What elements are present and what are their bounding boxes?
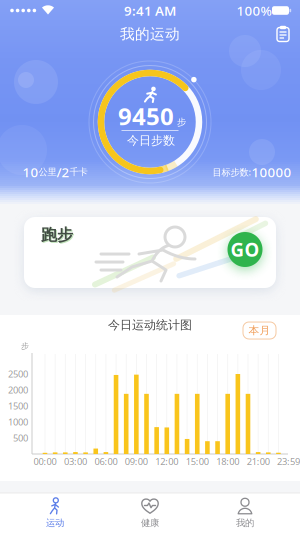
staticText: 步	[177, 116, 186, 128]
staticText: 12:00	[155, 455, 178, 468]
staticText: 9:41 AM	[124, 2, 176, 19]
button[interactable]: 跑步	[24, 217, 276, 288]
staticText: 1000	[8, 416, 28, 428]
staticText: 21:00	[247, 455, 270, 468]
staticText: 我的	[236, 517, 254, 529]
staticText: 健康	[141, 517, 159, 529]
staticText: 2500	[8, 368, 28, 380]
staticText: 运动	[46, 517, 64, 529]
staticText: /2	[56, 163, 69, 181]
staticText: 1500	[8, 400, 28, 412]
staticText: 03:00	[64, 455, 87, 468]
staticText: 今日运动统计图	[108, 318, 192, 332]
staticText: 本月	[248, 324, 270, 337]
staticText: 100%	[236, 2, 271, 19]
staticText: 跑步	[41, 225, 73, 245]
staticText: 10000	[251, 163, 291, 181]
staticText: 目标步数:	[212, 166, 251, 178]
staticText: 步	[21, 341, 29, 351]
staticText: GO	[230, 237, 259, 262]
staticText: 18:00	[216, 455, 239, 468]
button[interactable]: 运动	[20, 494, 90, 532]
staticText: 09:00	[125, 455, 148, 468]
button[interactable]: 本月	[243, 322, 276, 339]
staticText: 今日步数	[127, 133, 175, 148]
button[interactable]: 运动记录	[271, 21, 295, 45]
button[interactable]: 健康	[115, 494, 185, 532]
staticText: 我的运动	[120, 25, 180, 43]
button[interactable]: 开始跑步	[225, 230, 264, 269]
staticText: 千卡	[69, 166, 87, 178]
staticText: 23:59	[277, 455, 300, 468]
button[interactable]: 我的	[210, 494, 280, 532]
staticText: 跑步	[42, 226, 74, 246]
staticText: 公里	[38, 166, 56, 178]
staticText: 500	[13, 432, 28, 444]
staticText: 2000	[8, 384, 28, 396]
staticText: 15:00	[186, 455, 209, 468]
staticText: 9450	[118, 100, 174, 132]
staticText: 10	[22, 163, 38, 181]
staticText: 06:00	[94, 455, 117, 468]
staticText: 00:00	[33, 455, 56, 468]
